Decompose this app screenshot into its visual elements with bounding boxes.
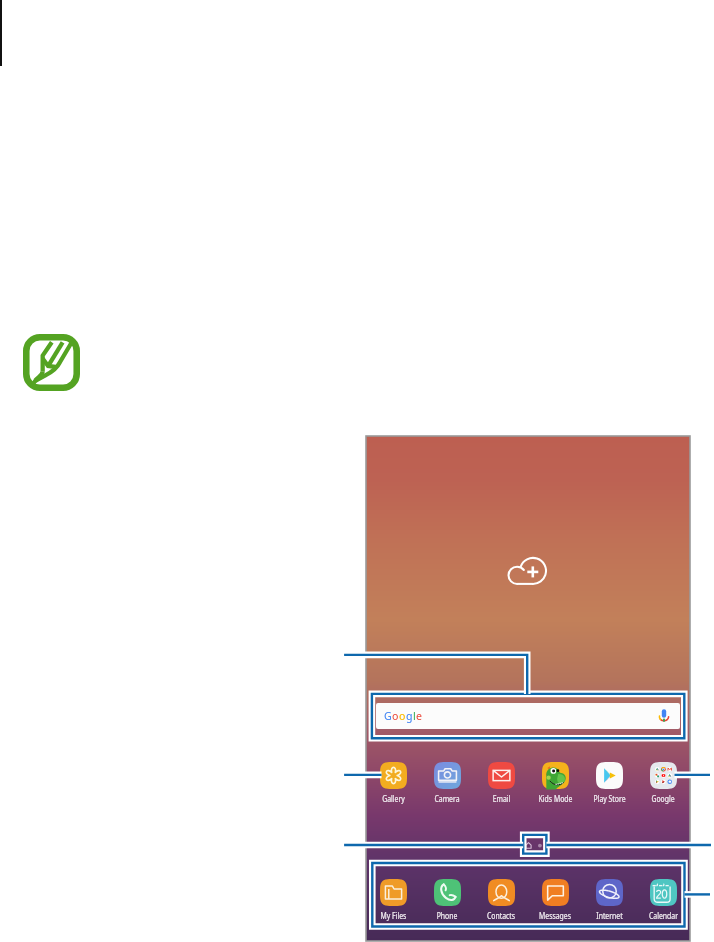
staticText: Kids Mode xyxy=(538,793,573,805)
button[interactable]: Contacts xyxy=(474,879,528,922)
staticText: Contacts xyxy=(487,910,515,922)
staticText: Calendar xyxy=(649,910,678,922)
button[interactable]: Messages xyxy=(528,879,582,922)
button[interactable]: Gallery xyxy=(366,762,420,805)
staticText: G xyxy=(384,709,392,723)
button[interactable]: Google xyxy=(636,762,690,805)
button[interactable]: G xyxy=(376,703,680,729)
button[interactable]: Email xyxy=(474,762,528,805)
staticText: o xyxy=(399,709,406,723)
button[interactable]: My Files xyxy=(366,879,420,922)
staticText: Email xyxy=(492,793,511,805)
button[interactable]: Phone xyxy=(420,879,474,922)
staticText: g xyxy=(406,709,413,723)
staticText: l xyxy=(413,709,416,723)
staticText: Google xyxy=(651,793,675,805)
button[interactable]: Play Store xyxy=(582,762,636,805)
button[interactable]: Calendar xyxy=(636,879,690,922)
button[interactable]: Camera xyxy=(420,762,474,805)
button[interactable]: Kids Mode xyxy=(528,762,582,805)
staticText: o xyxy=(392,709,399,723)
staticText: Gallery xyxy=(382,793,405,805)
staticText: Internet xyxy=(596,910,623,922)
staticText: Messages xyxy=(539,910,571,922)
staticText: Phone xyxy=(437,910,457,922)
button[interactable]: Internet xyxy=(582,879,636,922)
staticText: Play Store xyxy=(593,793,626,805)
staticText: Camera xyxy=(434,793,460,805)
staticText: e xyxy=(416,709,422,723)
staticText: My Files xyxy=(380,910,407,922)
